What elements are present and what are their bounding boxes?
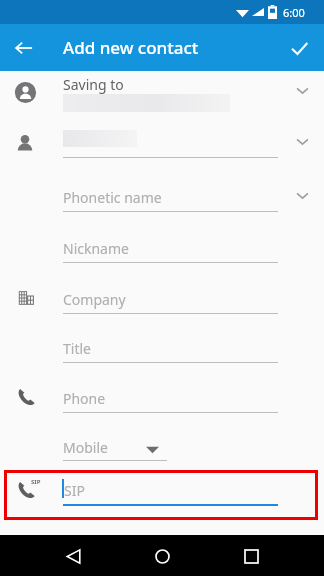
staticText: Add new contact — [63, 36, 199, 59]
button[interactable]: Phone — [0, 386, 324, 422]
staticText: Title — [63, 339, 91, 358]
button[interactable]: Mobile — [0, 435, 324, 469]
button[interactable]: Recent apps — [234, 539, 268, 573]
button[interactable]: Saving to — [0, 71, 324, 119]
staticText: Mobile — [63, 438, 108, 457]
staticText: SIP — [31, 478, 41, 486]
staticText: Company — [63, 290, 126, 309]
button[interactable]: SIP — [0, 478, 324, 516]
button[interactable]: Save contact — [282, 31, 316, 65]
button[interactable]: Title — [0, 336, 324, 372]
button[interactable]: Company — [0, 287, 324, 323]
staticText: Phone — [63, 389, 106, 408]
button[interactable]: Navigate up — [8, 32, 40, 64]
button[interactable] — [0, 128, 324, 168]
button[interactable]: Home — [145, 539, 179, 573]
staticText: SIP — [64, 481, 85, 500]
staticText: Phonetic name — [63, 188, 162, 207]
staticText: Nickname — [63, 239, 129, 258]
staticText: 6:00 — [283, 5, 305, 20]
button[interactable]: Phonetic name — [0, 185, 324, 221]
button[interactable]: Nickname — [0, 236, 324, 272]
staticText: Saving to — [63, 75, 124, 94]
button[interactable]: Back — [56, 539, 90, 573]
